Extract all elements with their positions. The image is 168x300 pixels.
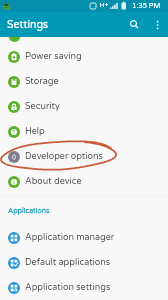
button[interactable]: Power saving: [0, 44, 168, 69]
staticText: Power saving: [25, 51, 82, 62]
button[interactable]: Search: [123, 12, 145, 37]
staticText: 1:35 PM: [132, 2, 161, 10]
button[interactable]: More options: [146, 12, 167, 37]
button[interactable]: About device: [0, 169, 168, 194]
button[interactable]: Storage: [0, 69, 168, 94]
staticText: Application manager: [25, 232, 115, 243]
button[interactable]: Application settings: [0, 275, 168, 300]
staticText: Help: [25, 126, 45, 137]
staticText: Developer options: [25, 151, 103, 162]
staticText: Applications: [8, 207, 50, 215]
button[interactable]: Default applications: [0, 250, 168, 275]
button[interactable]: Application manager: [0, 225, 168, 250]
staticText: Settings: [7, 18, 49, 31]
button[interactable]: Developer options: [0, 144, 168, 169]
button[interactable]: Security: [0, 94, 168, 119]
staticText: Security: [25, 101, 60, 112]
staticText: Storage: [25, 76, 59, 87]
staticText: Default applications: [25, 257, 111, 268]
staticText: About device: [25, 176, 82, 187]
staticText: Application settings: [25, 282, 111, 293]
button[interactable]: Help: [0, 119, 168, 144]
